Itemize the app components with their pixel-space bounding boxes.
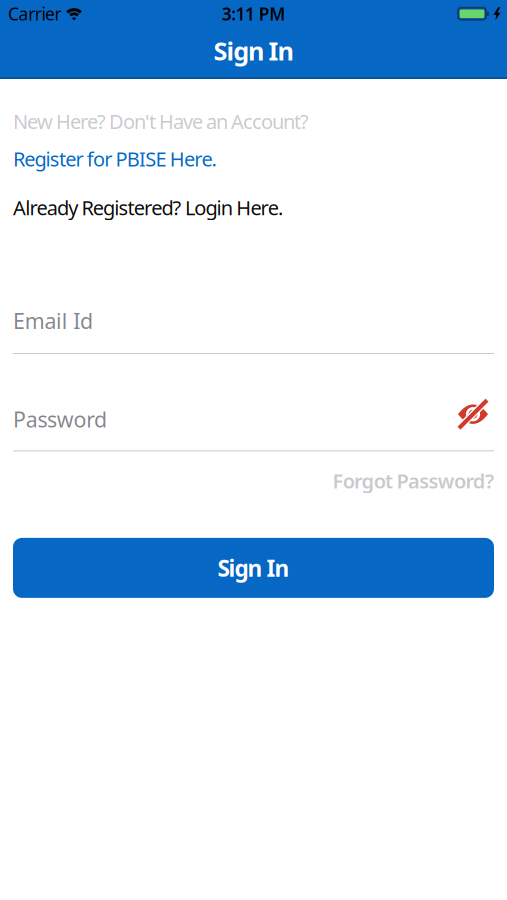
staticText: Sign In xyxy=(217,553,289,583)
staticText: Carrier xyxy=(8,2,62,25)
staticText: New Here? Don't Have an Account? xyxy=(13,108,309,135)
button[interactable]: Show password xyxy=(458,401,488,427)
button[interactable]: Sign In xyxy=(13,538,494,598)
staticText: Already Registered? Login Here. xyxy=(13,194,283,221)
button[interactable]: Forgot Password? xyxy=(332,467,494,494)
staticText: Forgot Password? xyxy=(332,467,494,494)
staticText: Email Id xyxy=(13,307,93,335)
button[interactable]: Register for PBISE Here. xyxy=(13,146,217,172)
staticText: Password xyxy=(13,405,107,433)
staticText: Register for PBISE Here. xyxy=(13,146,217,172)
staticText: Sign In xyxy=(214,34,293,67)
staticText: 3:11 PM xyxy=(222,2,285,25)
